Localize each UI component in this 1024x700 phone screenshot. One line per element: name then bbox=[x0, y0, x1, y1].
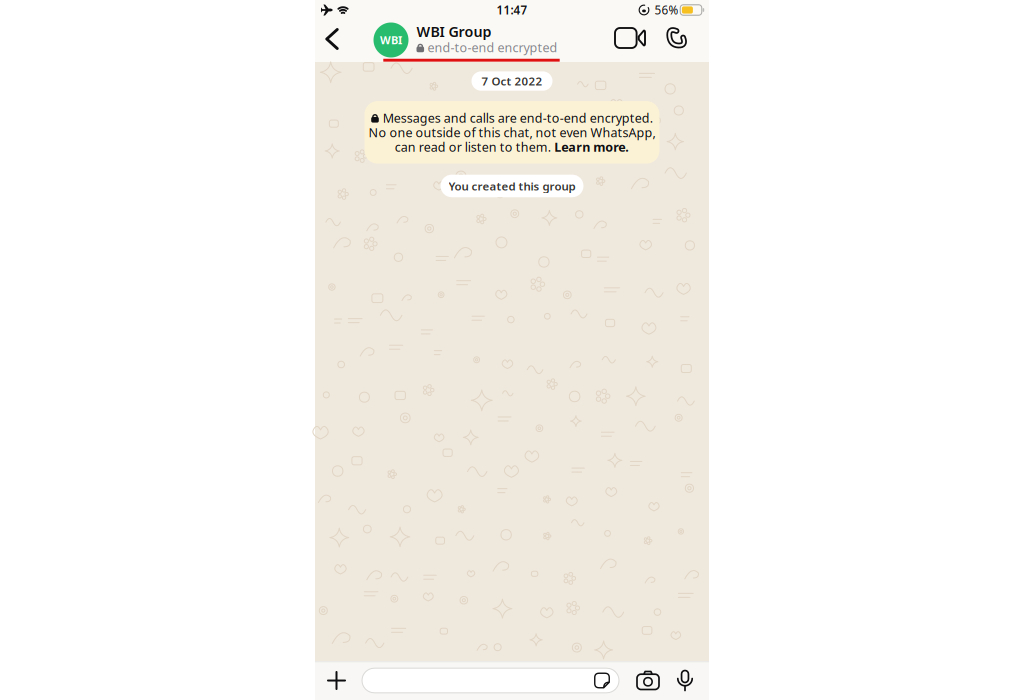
button[interactable]: Message bbox=[362, 668, 619, 693]
staticText: 11:47 bbox=[496, 2, 527, 18]
button[interactable]: Record voice message bbox=[671, 664, 698, 696]
staticText: Learn more. bbox=[554, 140, 629, 154]
staticText: 7 Oct 2022 bbox=[481, 73, 542, 89]
staticText: Messages and calls are end-to-end encryp… bbox=[383, 111, 653, 125]
staticText: WBI bbox=[380, 32, 402, 48]
button[interactable]: Camera bbox=[631, 665, 665, 695]
staticText: No one outside of this chat, not even Wh… bbox=[368, 125, 655, 140]
button[interactable]: Messages and calls are end-to-end encryp… bbox=[364, 101, 659, 164]
staticText: WBI Group bbox=[416, 22, 491, 41]
staticText: You created this group bbox=[448, 178, 575, 194]
button[interactable]: Video call bbox=[609, 22, 651, 54]
button[interactable]: Back bbox=[319, 21, 345, 56]
button[interactable]: Voice call bbox=[659, 21, 693, 55]
staticText: end-to-end encrypted bbox=[428, 39, 558, 56]
staticText: can read or listen to them. bbox=[395, 140, 551, 154]
button[interactable]: Stickers bbox=[591, 669, 613, 692]
button[interactable]: Attach bbox=[320, 664, 353, 697]
staticText: 56% bbox=[654, 2, 678, 18]
button[interactable]: WBI bbox=[373, 18, 599, 62]
